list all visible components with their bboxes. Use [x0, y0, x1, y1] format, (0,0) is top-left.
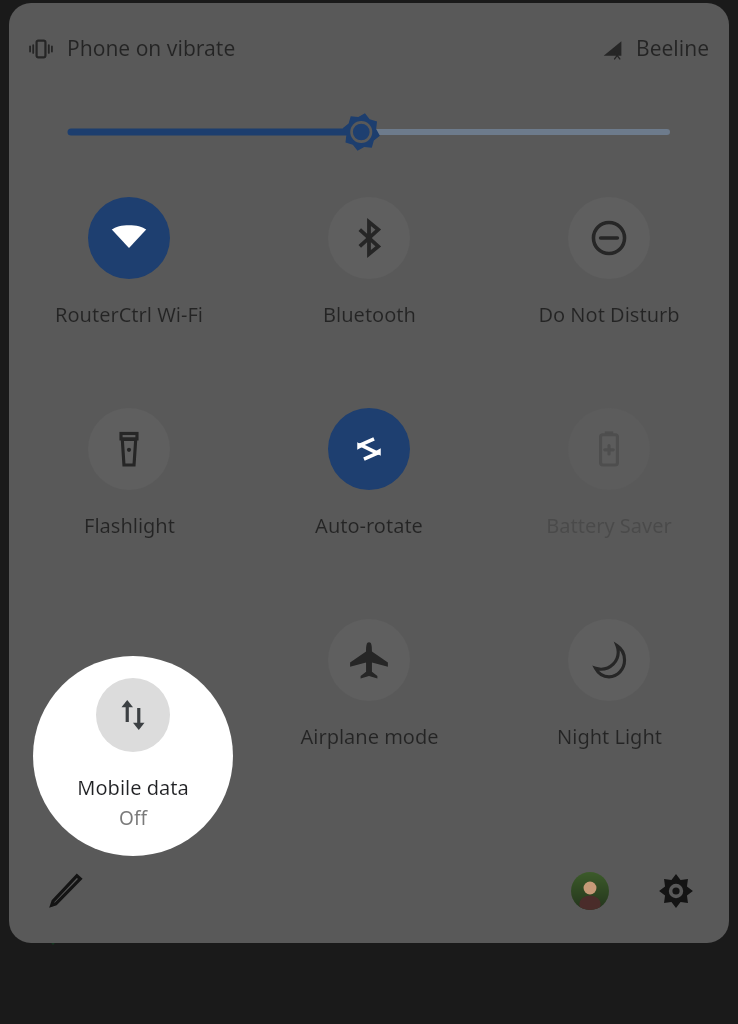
button[interactable]: Brightness	[71, 93, 667, 171]
staticText: Phone on vibrate	[67, 34, 236, 63]
button[interactable]: Mobile data	[69, 678, 197, 831]
button[interactable]: Airplane mode	[249, 619, 489, 750]
staticText: Battery Saver	[546, 512, 672, 539]
staticText: Off	[119, 805, 147, 831]
staticText: Auto-rotate	[315, 512, 423, 539]
staticText: Beeline	[636, 34, 709, 63]
staticText: Do Not Disturb	[538, 301, 680, 328]
button[interactable]: User account	[563, 864, 617, 918]
staticText: Airplane mode	[300, 723, 439, 750]
button[interactable]: Night Light	[489, 619, 729, 750]
button[interactable]: Auto-rotate	[249, 408, 489, 539]
button[interactable]: RouterCtrl Wi-Fi	[9, 197, 249, 328]
button[interactable]	[9, 619, 249, 701]
staticText: Mobile data	[77, 774, 189, 801]
staticText: RouterCtrl Wi-Fi	[55, 301, 203, 328]
button[interactable]: Bluetooth	[249, 197, 489, 328]
button[interactable]: Flashlight	[9, 408, 249, 539]
button[interactable]: Do Not Disturb	[489, 197, 729, 328]
button[interactable]: Settings	[649, 864, 703, 918]
staticText: Bluetooth	[323, 301, 416, 328]
button[interactable]: Beeline	[599, 34, 709, 63]
staticText: Night Light	[557, 723, 662, 750]
button[interactable]: Edit tiles	[39, 864, 93, 918]
button[interactable]: Phone on vibrate	[28, 34, 236, 63]
staticText: Flashlight	[84, 512, 175, 539]
